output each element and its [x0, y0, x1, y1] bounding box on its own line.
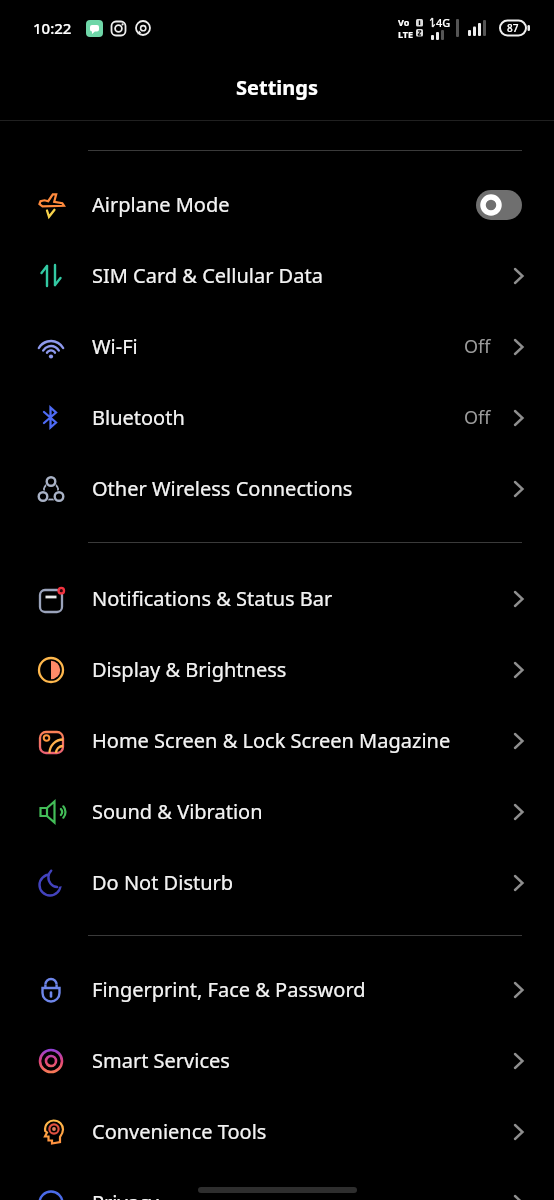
button[interactable]: Do Not Disturb	[0, 847, 554, 918]
button[interactable]: Airplane Mode	[0, 169, 554, 240]
staticText: Off	[464, 334, 491, 359]
staticText: LTE	[398, 28, 414, 40]
staticText: 4G	[436, 15, 451, 30]
staticText: Fingerprint, Face & Password	[92, 976, 366, 1003]
button[interactable]	[476, 190, 522, 220]
staticText: Home Screen & Lock Screen Magazine	[92, 727, 451, 754]
staticText: Other Wireless Connections	[92, 475, 353, 502]
staticText: 87	[507, 21, 519, 35]
button[interactable]: Wi-Fi	[0, 311, 554, 382]
button[interactable]: Home Screen & Lock Screen Magazine	[0, 705, 554, 776]
staticText: Smart Services	[92, 1047, 230, 1074]
staticText: Convenience Tools	[92, 1118, 267, 1145]
staticText: Privacy	[92, 1189, 159, 1200]
staticText: Settings	[236, 74, 318, 101]
button[interactable]: Display & Brightness	[0, 634, 554, 705]
staticText: Sound & Vibration	[92, 798, 263, 825]
staticText: Vo	[398, 16, 410, 28]
button[interactable]: SIM Card & Cellular Data	[0, 240, 554, 311]
button[interactable]: Notifications & Status Bar	[0, 563, 554, 634]
staticText: Display & Brightness	[92, 656, 287, 683]
button[interactable]: Sound & Vibration	[0, 776, 554, 847]
button[interactable]: Other Wireless Connections	[0, 453, 554, 524]
button[interactable]: Smart Services	[0, 1025, 554, 1096]
staticText: Do Not Disturb	[92, 869, 234, 896]
button[interactable]: Privacy	[0, 1167, 554, 1200]
staticText: Bluetooth	[92, 404, 185, 431]
button[interactable]: Bluetooth	[0, 382, 554, 453]
staticText: Airplane Mode	[92, 191, 230, 218]
staticText: SIM Card & Cellular Data	[92, 262, 323, 289]
staticText: Wi-Fi	[92, 333, 138, 360]
staticText: 10:22	[33, 18, 72, 38]
button[interactable]: Fingerprint, Face & Password	[0, 954, 554, 1025]
staticText: Off	[464, 405, 491, 430]
button[interactable]: Convenience Tools	[0, 1096, 554, 1167]
staticText: Notifications & Status Bar	[92, 585, 333, 612]
